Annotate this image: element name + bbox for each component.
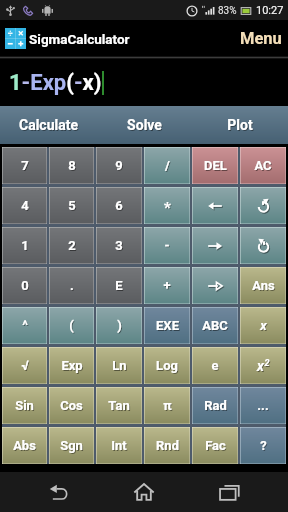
staticText: 6 [115, 198, 123, 213]
button[interactable]: Redo [240, 227, 286, 264]
staticText: SigmaCalculator [29, 31, 130, 47]
button[interactable]: 1 [2, 227, 47, 264]
button[interactable]: Fac [192, 427, 238, 464]
button[interactable]: ( [49, 307, 94, 344]
button[interactable]: √ [2, 347, 47, 384]
button[interactable]: / [144, 147, 190, 184]
button[interactable]: + [144, 267, 190, 304]
button[interactable]: x [240, 307, 286, 344]
staticText: ) [118, 319, 123, 334]
button[interactable]: E [96, 267, 142, 304]
staticText: Rnd [157, 439, 180, 454]
button[interactable]: Move cursor to end [192, 267, 238, 304]
button[interactable]: 4 [2, 187, 47, 224]
button[interactable]: EXE [144, 307, 190, 344]
staticText: 3 [116, 239, 124, 254]
staticText: DEL [205, 159, 228, 174]
button[interactable]: 6 [96, 187, 142, 224]
staticText: 4 [21, 198, 29, 213]
button[interactable]: Log [144, 347, 190, 384]
button[interactable]: Solve [96, 106, 192, 144]
staticText: Ans [252, 278, 275, 293]
button[interactable]: 5 [49, 187, 94, 224]
button[interactable]: Ans [240, 267, 286, 304]
staticText: Sin [15, 398, 34, 413]
staticText: DEL [204, 158, 227, 173]
button[interactable]: 8 [49, 147, 94, 184]
staticText: Plot [227, 117, 253, 133]
button[interactable]: Rnd [144, 427, 190, 464]
button[interactable]: 9 [96, 147, 142, 184]
staticText: Fac [206, 439, 227, 454]
button[interactable]: Cos [49, 387, 94, 424]
staticText: x [260, 318, 267, 333]
staticText: 83% [218, 5, 237, 17]
button[interactable]: Sgn [49, 427, 94, 464]
staticText: Tan [108, 398, 130, 413]
button[interactable]: Plot [192, 106, 288, 144]
button[interactable]: Int [96, 427, 142, 464]
button[interactable]: Undo [240, 187, 286, 224]
staticText: Sin [16, 399, 35, 414]
button[interactable]: Sin [2, 387, 47, 424]
staticText: ( [70, 319, 75, 334]
staticText: . [71, 279, 75, 294]
button[interactable]: DEL [192, 147, 238, 184]
button[interactable]: Menu [234, 24, 288, 53]
staticText: ^ [23, 319, 29, 334]
staticText: √ [21, 358, 29, 373]
button[interactable]: Backspace [192, 187, 238, 224]
staticText: 2 [68, 238, 76, 253]
button[interactable]: 0 [2, 267, 47, 304]
button[interactable]: Rad [192, 387, 238, 424]
staticText: Cos [60, 398, 83, 413]
button[interactable]: ... [240, 387, 286, 424]
staticText: 7 [22, 159, 30, 174]
staticText: * [164, 199, 171, 217]
button[interactable]: Home [118, 472, 170, 512]
button[interactable]: e [192, 347, 238, 384]
staticText: 3 [115, 238, 123, 253]
button[interactable]: Back [33, 472, 85, 512]
staticText: 2 [264, 358, 270, 369]
staticText: x [257, 358, 264, 374]
staticText: ABC [202, 318, 228, 333]
button[interactable]: - [144, 227, 190, 264]
button[interactable]: ^ [2, 307, 47, 344]
button[interactable]: 7 [2, 147, 47, 184]
staticText: 4 [22, 199, 30, 214]
staticText: x [258, 359, 265, 375]
button[interactable]: ) [96, 307, 142, 344]
button[interactable]: Move cursor right [192, 227, 238, 264]
staticText: / [166, 159, 171, 174]
button[interactable]: Recent apps [203, 472, 255, 512]
button[interactable]: AC [240, 147, 286, 184]
button[interactable]: Ln [96, 347, 142, 384]
button[interactable]: x [240, 347, 286, 384]
staticText: 9 [115, 158, 123, 173]
button[interactable]: π [144, 387, 190, 424]
staticText: 0 [21, 278, 29, 293]
button[interactable]: 2 [49, 227, 94, 264]
staticText: AC [254, 158, 272, 173]
staticText: 0 [22, 279, 30, 294]
staticText: ^ [22, 318, 28, 333]
button[interactable]: Tan [96, 387, 142, 424]
staticText: Abs [14, 439, 37, 454]
button[interactable]: 3 [96, 227, 142, 264]
button[interactable]: Exp [49, 347, 94, 384]
staticText: 5 [68, 198, 76, 213]
button[interactable]: 1-Exp(-x) [0, 59, 288, 106]
button[interactable]: ABC [192, 307, 238, 344]
staticText: ? [261, 439, 268, 454]
button[interactable]: Multiply [144, 187, 190, 224]
staticText: Int [112, 439, 128, 454]
button[interactable]: Abs [2, 427, 47, 464]
button[interactable]: Calculate [0, 106, 96, 144]
staticText: Log [156, 358, 178, 373]
button[interactable]: . [49, 267, 94, 304]
staticText: 7 [21, 158, 29, 173]
staticText: + [164, 279, 172, 294]
staticText: / [165, 158, 170, 173]
button[interactable]: ? [240, 427, 286, 464]
